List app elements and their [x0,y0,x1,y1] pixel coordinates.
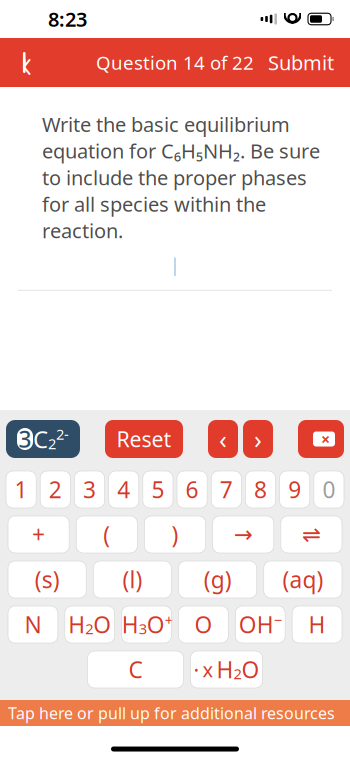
staticText: O [147,609,165,639]
button[interactable]: 1 [6,471,36,508]
button[interactable]: 9 [280,471,310,508]
staticText: H [68,609,85,639]
staticText: 8:23 [48,6,87,32]
staticText: Reset [116,425,171,453]
staticText: 7 [220,474,233,504]
staticText: 2 [49,474,62,504]
staticText: › [254,422,262,456]
staticText: + [165,610,173,630]
button[interactable]: ) [144,516,206,553]
staticText: O [194,609,212,639]
button[interactable]: 5 [143,471,173,508]
button[interactable]: 4 [109,471,139,508]
staticText: 5 [151,474,164,504]
button[interactable]: OH [235,606,285,643]
staticText: 1 [15,474,28,504]
staticText: Question 14 of 22 [96,50,254,75]
staticText: H [309,609,326,639]
staticText: x [202,656,213,683]
button[interactable]: H [65,606,115,643]
button[interactable]: H [122,606,171,643]
staticText: · [193,655,199,684]
staticText: − [274,610,282,630]
staticText: 2 [85,619,93,638]
button[interactable]: (l) [93,561,171,598]
staticText: (aq) [282,564,323,594]
staticText: 4 [117,474,130,504]
staticText: O [93,609,111,639]
button[interactable]: O [178,606,228,643]
staticText: 0 [322,474,335,504]
staticText: (g) [204,564,232,594]
button[interactable]: · [190,651,262,688]
button[interactable]: Tap here or pull up for additional resou… [0,700,350,726]
staticText: ( [103,519,110,549]
button[interactable]: Subscript and charge [6,420,80,458]
staticText: OH [239,609,274,639]
staticText: 6 [186,474,199,504]
staticText: ‹ [219,422,227,456]
button[interactable]: Move cursor left [208,420,238,458]
staticText: ) [171,519,178,549]
staticText: 9 [288,474,301,504]
staticText: 2- [56,424,69,444]
button[interactable]: 3 [74,471,105,508]
staticText: ⇌ [302,522,321,547]
button[interactable]: (s) [8,561,86,598]
button[interactable]: 2 [40,471,70,508]
staticText: (l) [122,564,142,594]
staticText: (s) [35,564,60,594]
button[interactable]: H [292,606,342,643]
staticText: → [234,522,253,547]
staticText: Write the basic equilibrium equation for… [42,111,320,244]
button[interactable]: 0 [314,471,344,508]
staticText: 2 [233,664,241,683]
staticText: Submit [268,49,334,76]
staticText: 3 [83,474,96,504]
staticText: × [321,428,330,450]
button[interactable]: Submit [252,38,350,87]
button[interactable]: Delete [298,420,344,458]
button[interactable]: Reset [105,420,183,458]
staticText: N [24,609,41,639]
staticText: H [216,654,233,684]
staticText: 8 [254,474,267,504]
button[interactable]: C [87,651,183,688]
button[interactable]: 8 [245,471,276,508]
staticText: + [32,519,45,549]
staticText: 3 [139,619,147,638]
staticText: O [241,654,259,684]
button[interactable]: ( [76,516,137,553]
button[interactable]: Back [0,38,54,87]
button[interactable]: ⇌ [281,516,342,553]
staticText: ‹ [21,36,32,89]
staticText: H [122,609,139,639]
button[interactable]: → [213,516,274,553]
staticText: 2 [48,434,56,453]
staticText: 3 [18,424,31,454]
button[interactable]: + [8,516,69,553]
button[interactable]: 7 [211,471,241,508]
button[interactable]: (g) [178,561,257,598]
staticText: C [33,423,48,455]
button[interactable]: N [8,606,58,643]
button[interactable]: 6 [177,471,207,508]
button[interactable]: Move cursor right [243,420,273,458]
button[interactable]: (aq) [264,561,342,598]
staticText: Tap here or pull up for additional resou… [8,702,335,724]
staticText: C [128,654,142,684]
